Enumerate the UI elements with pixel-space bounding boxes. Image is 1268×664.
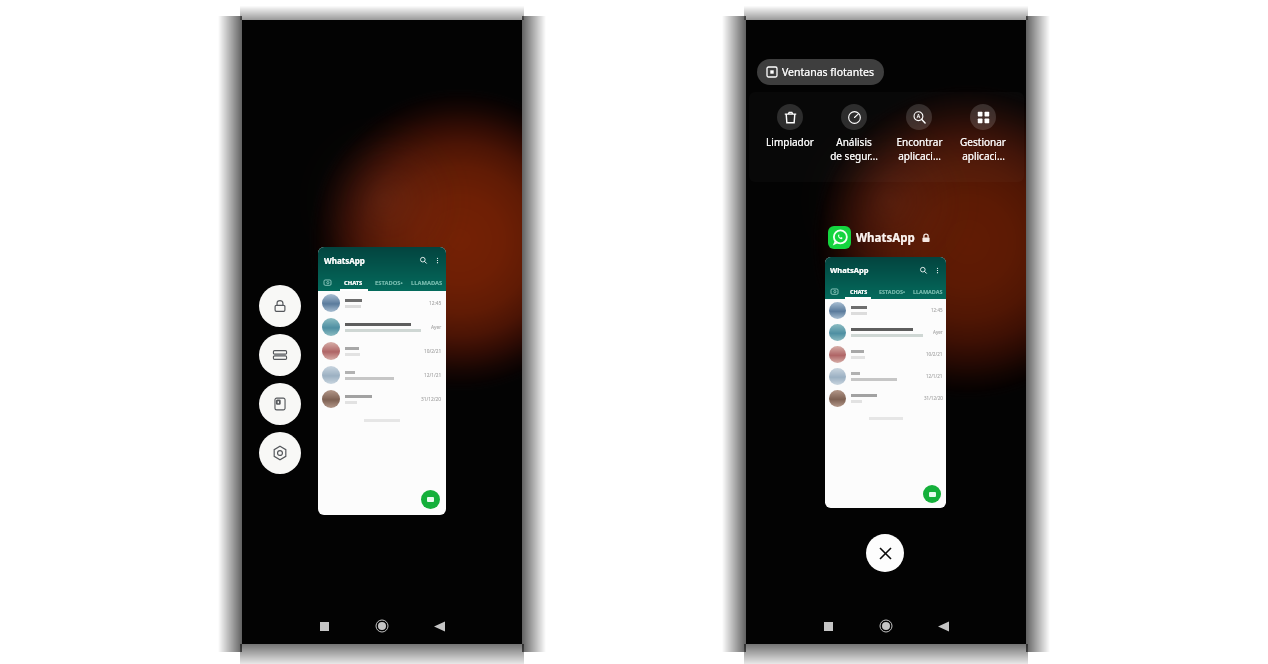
staticText: Ventanas flotantes xyxy=(782,65,874,79)
staticText: Limpiador xyxy=(766,135,814,149)
staticText: Gestionar xyxy=(960,135,1006,149)
button[interactable]: Manage apps xyxy=(948,104,1018,163)
staticText: WhatsApp xyxy=(324,255,365,266)
button[interactable]: 12/1/21 xyxy=(829,365,943,387)
staticText: 12:45 xyxy=(931,307,943,313)
button[interactable]: LLAMADAS xyxy=(408,279,446,287)
staticText: WhatsApp xyxy=(830,265,869,275)
button[interactable]: Floating window xyxy=(259,383,301,425)
staticText: 12/1/21 xyxy=(424,372,442,379)
button[interactable]: More options xyxy=(433,256,442,265)
staticText: LLAMADAS xyxy=(913,288,943,295)
button[interactable]: Ayer xyxy=(829,321,943,343)
staticText: 31/12/20 xyxy=(421,396,442,403)
staticText: de segur… xyxy=(830,149,878,163)
button[interactable]: Cleaner xyxy=(755,104,825,149)
button[interactable]: Camera xyxy=(318,279,337,286)
button[interactable]: Camera xyxy=(825,288,843,295)
staticText: 10/2/21 xyxy=(926,351,943,357)
button[interactable]: Split screen xyxy=(259,334,301,376)
button[interactable]: LLAMADAS xyxy=(910,288,946,295)
staticText: 10/2/21 xyxy=(424,348,442,355)
staticText: aplicaci… xyxy=(898,149,941,163)
button[interactable]: Recent apps xyxy=(310,612,338,640)
button[interactable]: Search xyxy=(419,256,428,265)
staticText: CHATS xyxy=(850,288,868,295)
button[interactable]: Lock this app xyxy=(259,285,301,327)
button[interactable]: Recent apps xyxy=(814,612,842,640)
button[interactable]: 12:45 xyxy=(322,291,442,315)
button[interactable]: CHATS xyxy=(337,279,370,287)
button[interactable]: 10/2/21 xyxy=(322,339,442,363)
staticText: Análisis xyxy=(836,135,872,149)
button[interactable]: ESTADOS• xyxy=(874,288,910,295)
button[interactable]: More options xyxy=(933,266,942,275)
button[interactable]: New chat xyxy=(421,490,440,509)
button[interactable]: New chat xyxy=(923,485,941,503)
staticText: CHATS xyxy=(344,279,363,287)
button[interactable]: CHATS xyxy=(843,288,874,295)
button[interactable]: WhatsApp xyxy=(828,226,931,249)
button[interactable]: 31/12/20 xyxy=(829,387,943,409)
staticText: 31/12/20 xyxy=(924,395,943,401)
button[interactable]: Find apps xyxy=(884,104,954,163)
button[interactable]: Back xyxy=(929,612,957,640)
staticText: 12:45 xyxy=(429,300,442,307)
button[interactable]: Home xyxy=(368,612,396,640)
staticText: LLAMADAS xyxy=(411,279,443,287)
button[interactable]: 12:45 xyxy=(829,299,943,321)
staticText: aplicaci… xyxy=(962,149,1005,163)
button[interactable]: 31/12/20 xyxy=(322,387,442,411)
staticText: WhatsApp xyxy=(856,230,915,246)
button[interactable]: Back xyxy=(425,612,453,640)
button[interactable]: ESTADOS• xyxy=(370,279,408,287)
button[interactable]: App settings xyxy=(259,432,301,474)
button[interactable]: 10/2/21 xyxy=(829,343,943,365)
staticText: ESTADOS• xyxy=(879,288,906,295)
staticText: Ayer xyxy=(431,324,442,331)
button[interactable]: 12/1/21 xyxy=(322,363,442,387)
staticText: 12/1/21 xyxy=(926,373,943,379)
button[interactable]: Home xyxy=(872,612,900,640)
staticText: Encontrar xyxy=(896,135,943,149)
button[interactable]: Security scan xyxy=(819,104,889,163)
staticText: ESTADOS• xyxy=(375,279,403,287)
button[interactable]: Ayer xyxy=(322,315,442,339)
staticText: Ayer xyxy=(933,329,943,335)
button[interactable]: Ventanas flotantes xyxy=(757,59,884,85)
button[interactable]: Search xyxy=(919,266,928,275)
button[interactable]: Close all xyxy=(866,534,904,572)
